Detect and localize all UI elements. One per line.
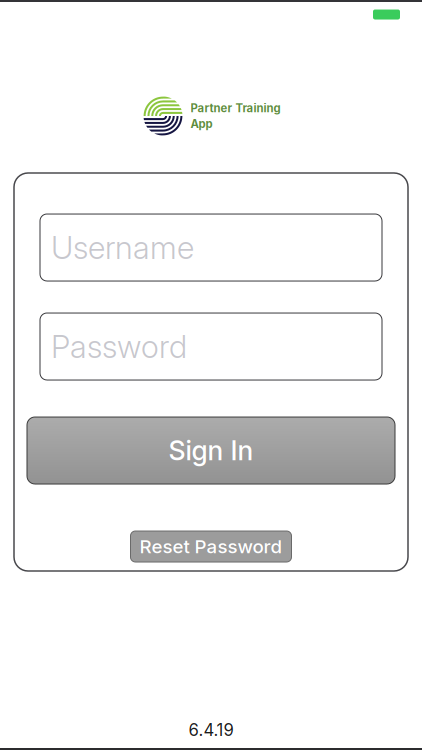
staticText: Reset Password bbox=[139, 535, 282, 558]
staticText: Partner Training bbox=[190, 101, 280, 115]
staticText: 6.4.19 bbox=[188, 720, 233, 740]
staticText: Sign In bbox=[168, 434, 253, 467]
button[interactable]: Reset Password bbox=[130, 531, 291, 562]
staticText: App bbox=[190, 117, 212, 131]
button[interactable]: Sign In bbox=[27, 417, 395, 484]
staticText: Password bbox=[51, 327, 187, 365]
staticText: Username bbox=[51, 228, 194, 266]
